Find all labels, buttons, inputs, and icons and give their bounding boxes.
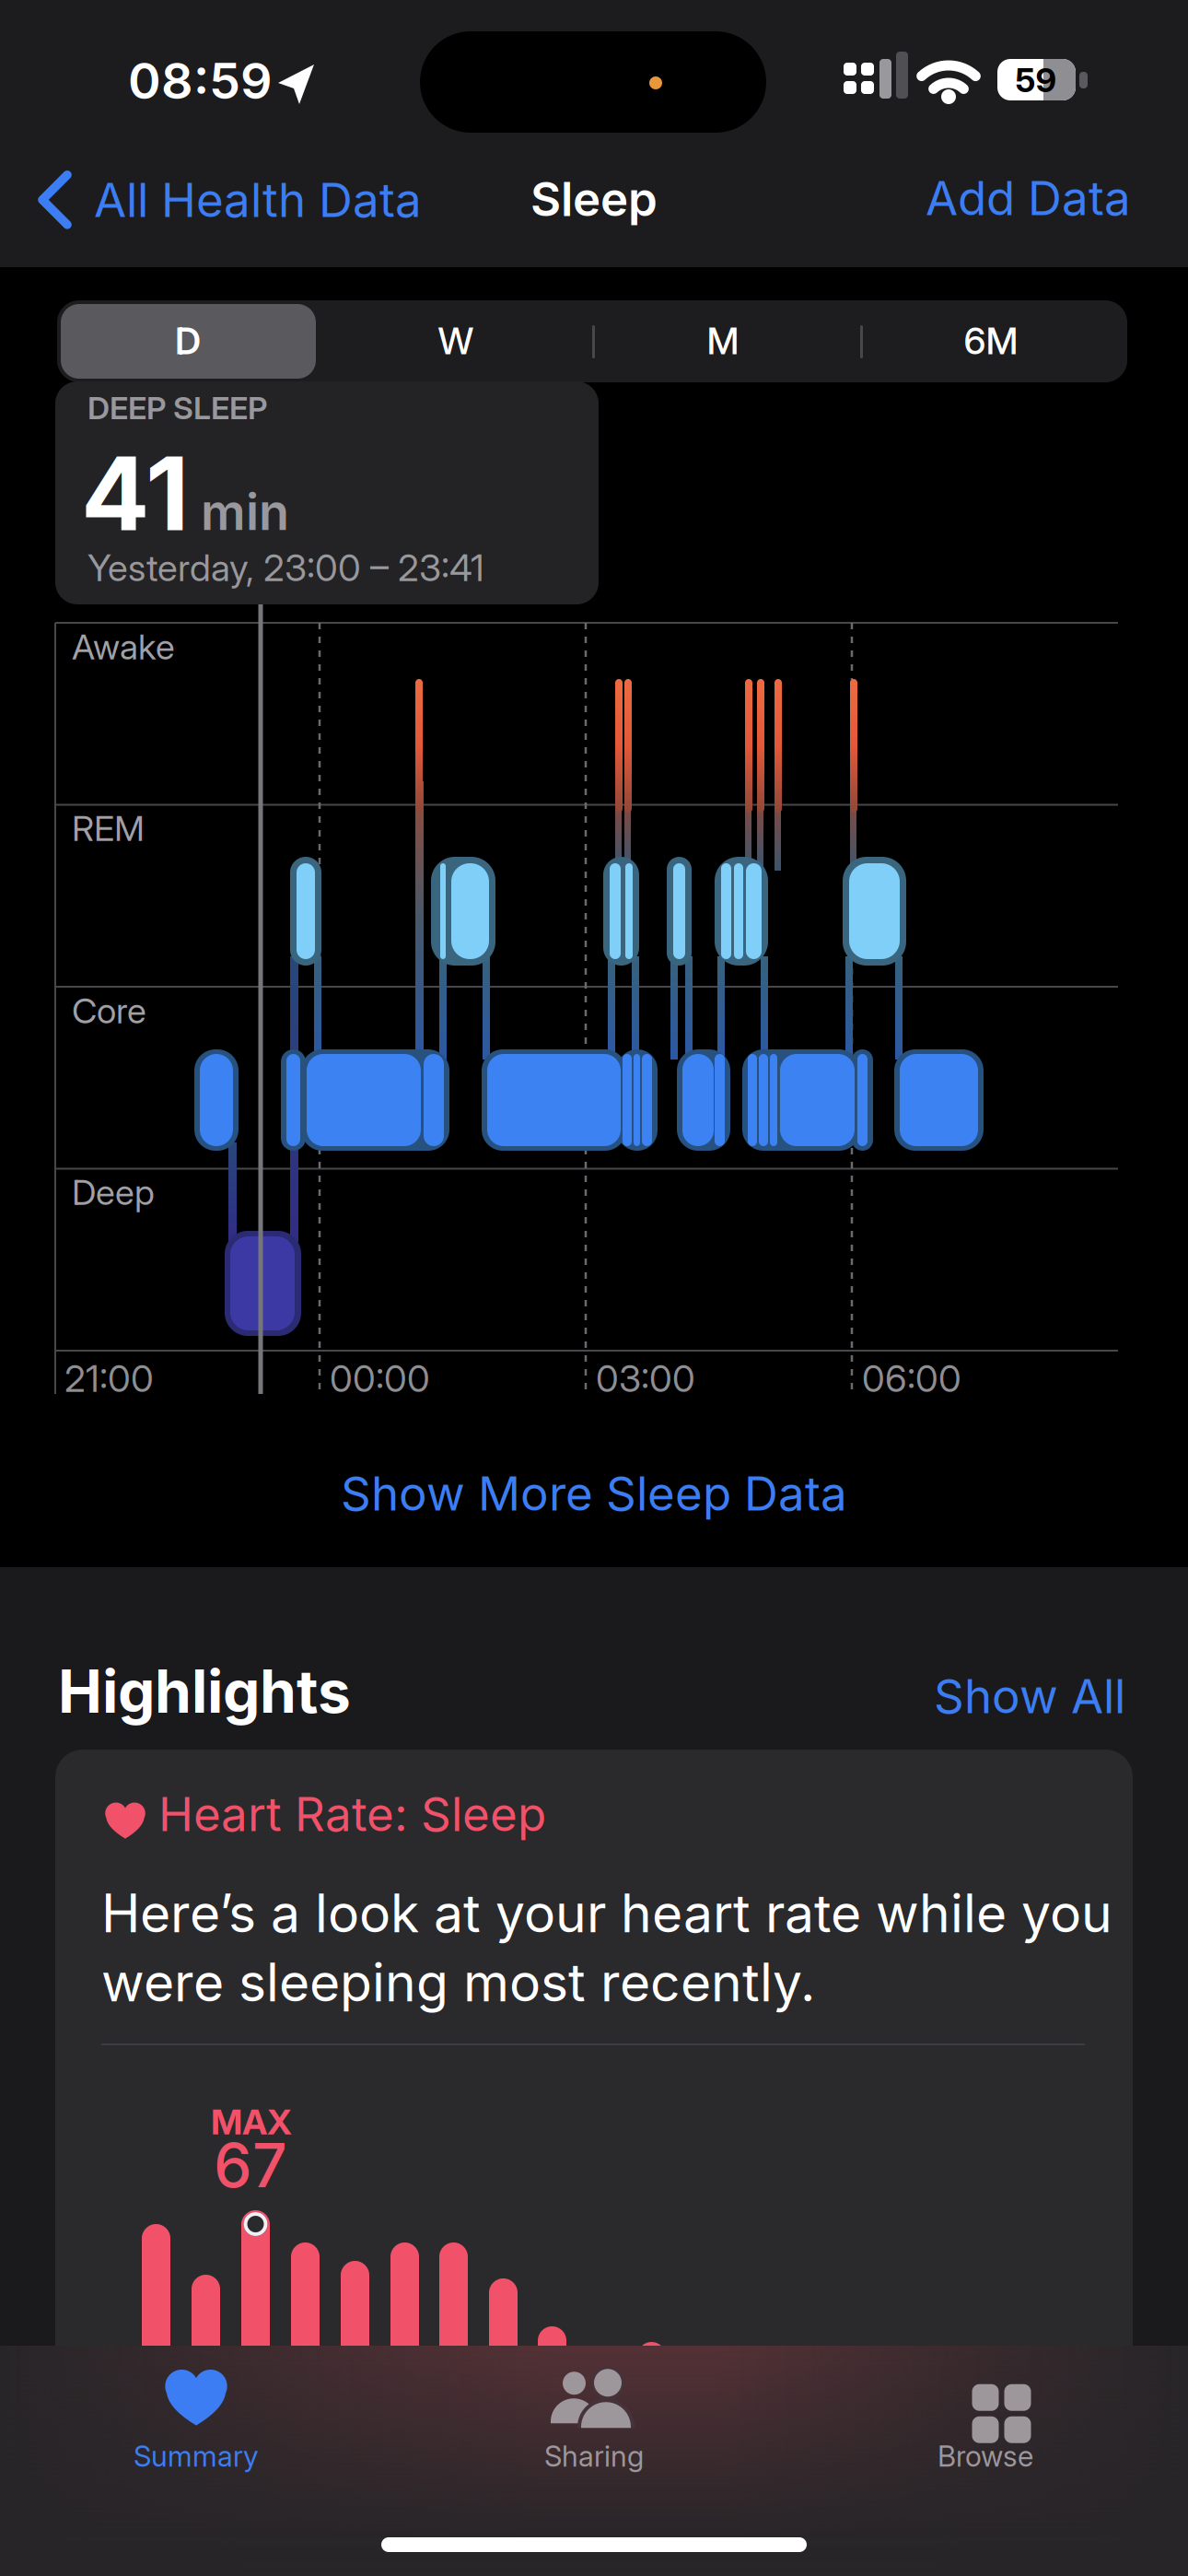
staticText: 59 [1015,60,1057,100]
staticText: Awake [72,626,175,668]
button[interactable]: W [327,300,585,382]
button[interactable]: Summary [49,2352,344,2490]
button[interactable]: Add Data [763,170,1131,226]
staticText: Add Data [926,170,1131,226]
staticText: Yesterday, 23:00 – 23:41 [87,545,484,590]
staticText: 08:59 [128,51,273,111]
staticText: 00:00 [330,1356,430,1401]
staticText: W [438,319,474,363]
staticText: 67 [214,2128,287,2202]
button[interactable]: Show All [757,1668,1125,1724]
staticText: D [175,319,201,363]
button[interactable]: M [594,300,852,382]
staticText: Sharing [544,2439,644,2473]
staticText: DEEP SLEEP [87,389,267,427]
staticText: 06:00 [862,1356,961,1401]
staticText: MAX [211,2101,292,2143]
staticText: 41 [81,432,189,555]
staticText: Show All [934,1668,1125,1724]
staticText: Browse [938,2439,1033,2473]
staticText: Heart Rate: Sleep [158,1786,546,1842]
staticText: min [201,482,289,542]
button[interactable]: 6M [862,300,1120,382]
button[interactable]: D [59,300,317,382]
button[interactable]: Browse [838,2352,1133,2490]
staticText: 03:00 [596,1356,695,1401]
staticText: Core [72,989,146,1032]
button[interactable]: Show More Sleep Data [341,1465,847,1522]
staticText: were sleeping most recently. [101,1950,815,2014]
button[interactable]: Heart Rate: Sleep [55,1750,1133,2576]
staticText: Here’s a look at your heart rate while y… [101,1881,1112,1945]
staticText: M [707,319,739,363]
staticText: 6M [964,319,1018,363]
staticText: Sleep [530,171,658,227]
staticText: Deep [72,1171,155,1213]
staticText: Highlights [58,1656,351,1727]
staticText: Summary [134,2439,259,2473]
staticText: 21:00 [64,1356,154,1401]
button[interactable]: Sharing [447,2352,741,2490]
staticText: Show More Sleep Data [341,1465,847,1522]
staticText: All Health Data [94,171,422,228]
button[interactable]: Back: All Health Data [39,171,422,228]
staticText: REM [72,807,145,849]
